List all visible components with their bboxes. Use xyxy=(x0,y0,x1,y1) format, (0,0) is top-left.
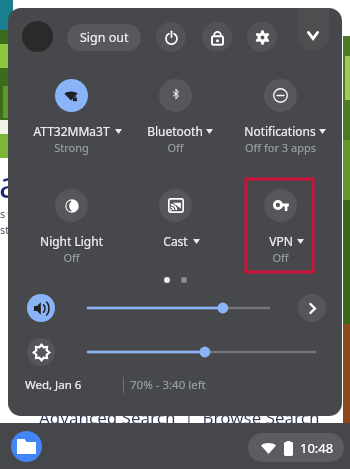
staticText: Strong xyxy=(54,140,89,155)
button[interactable]: Volume xyxy=(27,294,55,322)
staticText: VPN xyxy=(269,233,293,249)
staticText: st xyxy=(0,222,10,237)
button[interactable]: Lock xyxy=(202,22,232,52)
staticText: Night Light xyxy=(40,233,103,249)
staticText: Wed, Jan 6 xyxy=(25,377,82,393)
button[interactable]: 70% - 3:40 left xyxy=(130,374,206,396)
staticText: Bluetooth xyxy=(147,123,203,139)
staticText: Off for 3 apps xyxy=(245,140,316,155)
staticText: Sign out xyxy=(80,29,129,46)
button[interactable]: Brightness level xyxy=(80,343,323,361)
staticText: Off xyxy=(272,250,289,265)
button[interactable]: Brightness xyxy=(27,338,55,366)
staticText: s xyxy=(0,206,6,221)
button[interactable]: Cast xyxy=(127,189,223,275)
button[interactable]: Settings xyxy=(247,22,277,52)
button[interactable]: ATT32MMa3T xyxy=(23,79,119,165)
staticText: Notifications xyxy=(244,123,316,139)
button[interactable]: Volume level xyxy=(80,299,277,317)
staticText: Advanced Search | Browse Search xyxy=(39,406,320,429)
button[interactable]: System status tray xyxy=(248,433,344,462)
button[interactable]: Notifications xyxy=(232,79,328,165)
button[interactable]: Power xyxy=(156,22,186,52)
button[interactable]: Wed, Jan 6 xyxy=(25,374,82,396)
button[interactable]: Night Light xyxy=(23,189,119,275)
staticText: Cast xyxy=(163,233,188,249)
staticText: Off xyxy=(167,140,184,155)
button[interactable]: Bluetooth xyxy=(127,79,223,165)
button[interactable]: VPN xyxy=(232,189,328,275)
button[interactable]: Files xyxy=(11,431,42,462)
staticText: a xyxy=(0,160,20,209)
button[interactable]: Collapse xyxy=(298,8,329,51)
staticText: 10:48 xyxy=(300,439,334,457)
button[interactable]: Account xyxy=(22,21,53,52)
staticText: 70% - 3:40 left xyxy=(130,377,206,393)
staticText: ATT32MMa3T xyxy=(33,123,110,139)
button[interactable]: More volume settings xyxy=(298,294,326,322)
staticText: Off xyxy=(63,250,80,265)
button[interactable]: Sign out xyxy=(67,24,141,51)
